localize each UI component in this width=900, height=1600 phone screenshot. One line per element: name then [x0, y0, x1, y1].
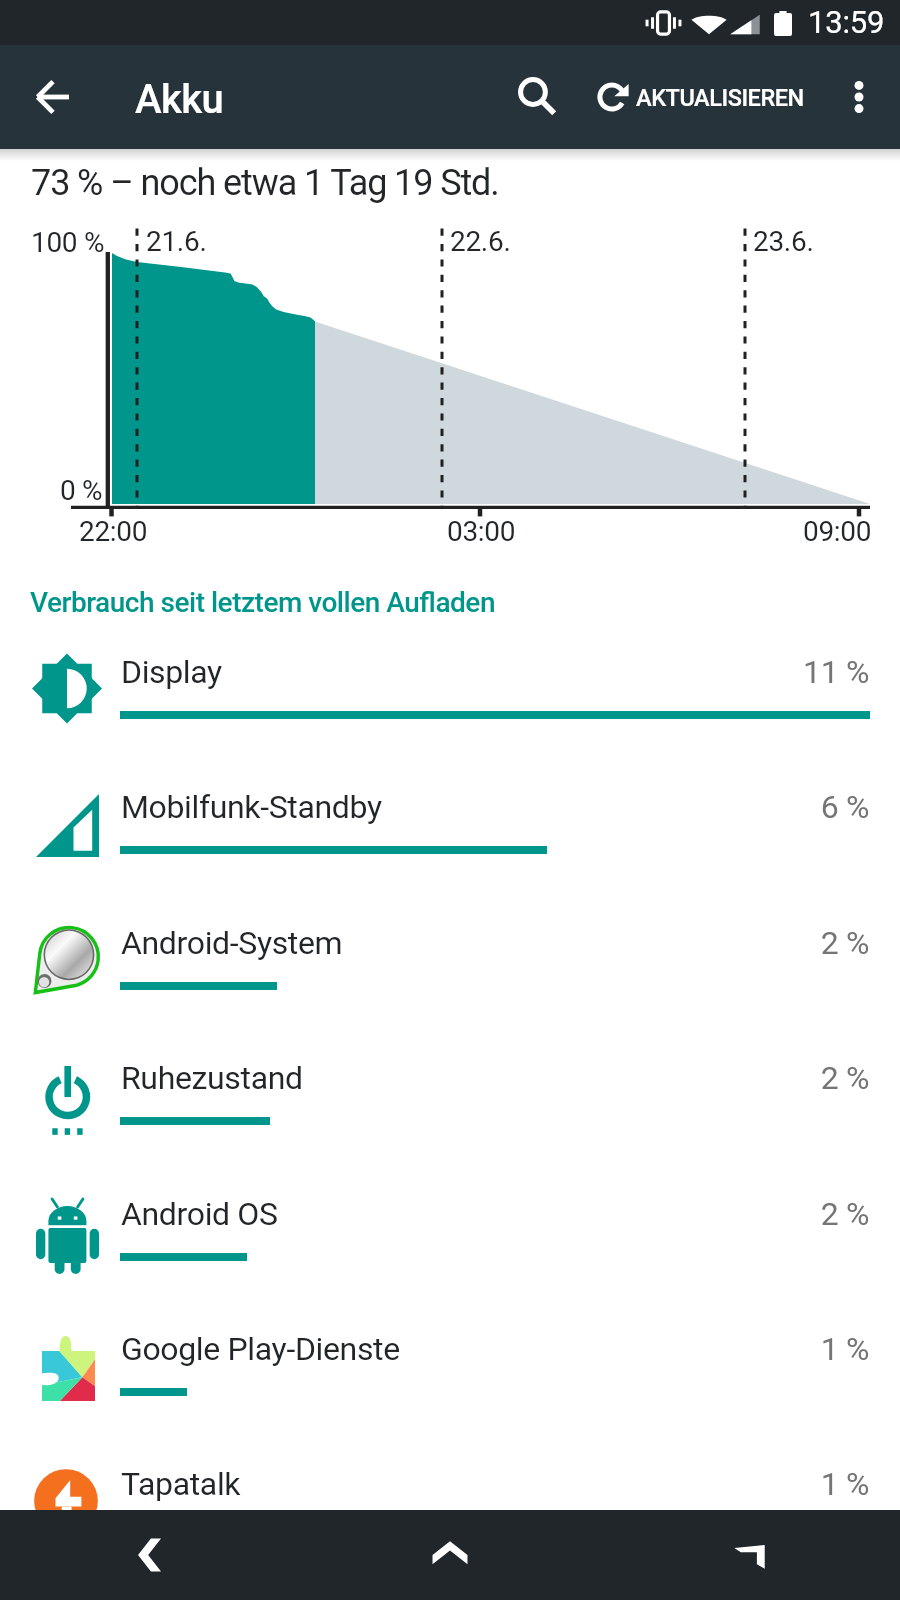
staticText: 2 %: [0, 924, 869, 962]
staticText: Google Play-Dienste: [121, 1330, 400, 1368]
button[interactable]: Recent apps: [600, 1510, 900, 1600]
staticText: AKTUALISIEREN: [636, 84, 804, 112]
staticText: 1 %: [0, 1465, 869, 1503]
staticText: Android OS: [121, 1195, 278, 1233]
button[interactable]: Search: [496, 45, 580, 149]
staticText: Mobilfunk-Standby: [121, 788, 382, 826]
staticText: Verbrauch seit letztem vollen Aufladen: [30, 586, 495, 619]
staticText: 13:59: [808, 4, 885, 40]
button[interactable]: AKTUALISIEREN: [580, 45, 818, 149]
staticText: 1 %: [0, 1330, 869, 1368]
staticText: 09:00: [803, 515, 872, 548]
button[interactable]: Ruhezustand: [0, 1043, 900, 1178]
button[interactable]: Google Play-Dienste: [0, 1314, 900, 1449]
staticText: 2 %: [0, 1195, 869, 1233]
staticText: 22:00: [79, 515, 148, 548]
button[interactable]: Home: [300, 1510, 600, 1600]
staticText: 03:00: [447, 515, 516, 548]
button[interactable]: Display: [0, 637, 900, 772]
staticText: 22.6.: [450, 225, 511, 258]
staticText: 100 %: [31, 226, 105, 259]
button[interactable]: Tapatalk: [0, 1449, 900, 1584]
staticText: 6 %: [0, 788, 869, 826]
button[interactable]: More options: [818, 45, 900, 149]
staticText: 21.6.: [146, 225, 207, 258]
staticText: 73 % – noch etwa 1 Tag 19 Std.: [31, 162, 499, 204]
button[interactable]: Mobilfunk-Standby: [0, 772, 900, 907]
button[interactable]: Android-System: [0, 908, 900, 1043]
button[interactable]: Navigate up: [0, 45, 105, 149]
staticText: 11 %: [0, 653, 869, 691]
staticText: 23.6.: [753, 225, 814, 258]
button[interactable]: Back: [0, 1510, 300, 1600]
staticText: 2 %: [0, 1059, 869, 1097]
staticText: Ruhezustand: [121, 1059, 303, 1097]
staticText: Akku: [135, 76, 224, 123]
staticText: 0 %: [60, 474, 103, 507]
staticText: Display: [121, 653, 222, 691]
button[interactable]: Android OS: [0, 1179, 900, 1314]
staticText: Tapatalk: [121, 1465, 241, 1503]
staticText: Android-System: [121, 924, 343, 962]
